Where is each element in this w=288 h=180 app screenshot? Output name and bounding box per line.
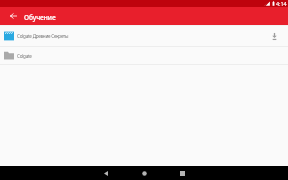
staticText: Colgate Древние Секреты	[17, 33, 260, 39]
staticText: Colgate	[17, 53, 260, 59]
staticText: Обучение	[24, 13, 56, 22]
button[interactable]: Colgate	[0, 47, 288, 64]
button[interactable]: Recent apps	[163, 166, 201, 180]
button[interactable]: Back	[4, 7, 23, 25]
button[interactable]: Download	[260, 26, 288, 46]
staticText: 4:14	[276, 0, 287, 7]
button[interactable]: Colgate Древние Секреты	[0, 26, 288, 46]
button[interactable]: Home	[125, 166, 163, 180]
button[interactable]: Back	[87, 166, 125, 180]
